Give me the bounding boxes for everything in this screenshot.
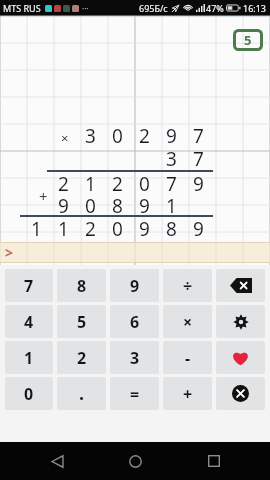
staticText: 1: [85, 171, 96, 194]
staticText: 0: [112, 123, 123, 146]
button[interactable]: Favorite: [216, 341, 265, 374]
staticText: 2: [85, 216, 96, 239]
button[interactable]: 7: [5, 269, 53, 302]
staticText: 7: [24, 275, 34, 297]
staticText: 16:13: [243, 2, 267, 14]
staticText: 7: [193, 146, 204, 169]
staticText: =: [130, 383, 140, 405]
staticText: 0: [112, 216, 123, 239]
button[interactable]: 0: [5, 377, 53, 410]
button[interactable]: 8: [57, 269, 106, 302]
staticText: 4: [24, 311, 34, 333]
staticText: 0: [139, 171, 150, 194]
staticText: ÷: [183, 275, 193, 297]
staticText: 3: [130, 347, 140, 369]
button[interactable]: Saved expression: [233, 29, 263, 51]
staticText: 8: [112, 193, 123, 216]
button[interactable]: Back: [35, 442, 79, 480]
button[interactable]: Clear: [216, 377, 265, 410]
button[interactable]: >: [0, 242, 270, 263]
button[interactable]: -: [163, 341, 212, 374]
staticText: ···: [82, 3, 89, 14]
staticText: 9: [193, 216, 204, 239]
staticText: 7: [193, 123, 204, 146]
staticText: 9: [193, 171, 204, 194]
staticText: 2: [139, 123, 150, 146]
button[interactable]: Backspace: [216, 269, 265, 302]
button[interactable]: Settings: [216, 305, 265, 338]
button[interactable]: ÷: [163, 269, 212, 302]
staticText: 9: [58, 193, 69, 216]
button[interactable]: .: [57, 377, 106, 410]
staticText: 8: [77, 275, 87, 297]
button[interactable]: 5: [57, 305, 106, 338]
button[interactable]: =: [110, 377, 159, 410]
staticText: 6: [130, 311, 140, 333]
staticText: 47%: [206, 2, 224, 14]
button[interactable]: +: [163, 377, 212, 410]
button[interactable]: 1: [5, 341, 53, 374]
staticText: 9: [139, 216, 150, 239]
staticText: 9: [166, 123, 177, 146]
staticText: 7: [166, 171, 177, 194]
button[interactable]: 3: [110, 341, 159, 374]
staticText: 1: [166, 193, 177, 216]
staticText: 9: [130, 275, 140, 297]
staticText: 2: [58, 171, 69, 194]
staticText: 0: [85, 193, 96, 216]
staticText: 0: [24, 383, 34, 405]
button[interactable]: 4: [5, 305, 53, 338]
staticText: 2: [77, 347, 87, 369]
staticText: 3: [166, 146, 177, 169]
staticText: 9: [139, 193, 150, 216]
button[interactable]: Home: [113, 442, 157, 480]
button[interactable]: 6: [110, 305, 159, 338]
button[interactable]: 9: [110, 269, 159, 302]
button[interactable]: ×: [163, 305, 212, 338]
staticText: +: [183, 383, 193, 405]
staticText: >: [5, 243, 14, 262]
staticText: ×: [183, 311, 193, 333]
staticText: 5: [77, 311, 87, 333]
button[interactable]: 2: [57, 341, 106, 374]
staticText: 695Б/c: [139, 2, 168, 14]
staticText: 3: [85, 123, 96, 146]
staticText: .: [79, 381, 85, 406]
staticText: 1: [31, 216, 42, 239]
button[interactable]: Recent apps: [192, 442, 236, 480]
staticText: 1: [58, 216, 69, 239]
staticText: ×: [61, 129, 69, 147]
staticText: 1: [24, 347, 34, 369]
staticText: 8: [166, 216, 177, 239]
staticText: 5: [244, 31, 252, 49]
staticText: +: [39, 186, 48, 204]
staticText: 2: [112, 171, 123, 194]
staticText: -: [185, 347, 191, 369]
staticText: MTS RUS: [3, 2, 41, 14]
